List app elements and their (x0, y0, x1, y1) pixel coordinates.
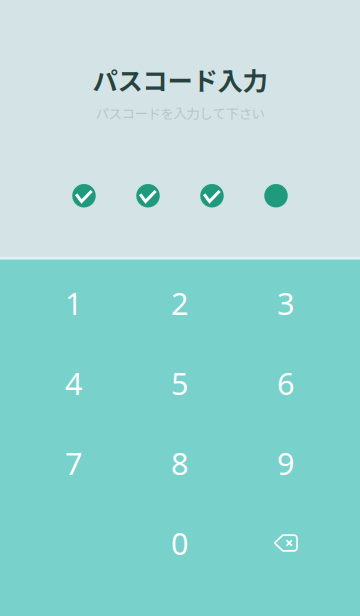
staticText: 5 (171, 363, 189, 403)
staticText: 6 (277, 363, 295, 403)
button[interactable]: 9 (233, 423, 339, 503)
staticText: パスコード入力 (92, 61, 267, 98)
staticText: 8 (171, 443, 189, 483)
staticText: 9 (277, 443, 295, 483)
staticText: 4 (65, 363, 83, 403)
button[interactable]: Delete (233, 503, 339, 583)
staticText: 3 (277, 283, 295, 323)
staticText: パスコードを入力して下さい (95, 103, 264, 122)
button[interactable]: 7 (21, 423, 127, 503)
button[interactable]: 6 (233, 343, 339, 423)
staticText: 1 (65, 283, 83, 323)
button[interactable]: 8 (127, 423, 233, 503)
button[interactable]: 0 (127, 503, 233, 583)
staticText: 7 (65, 443, 83, 483)
button[interactable]: 5 (127, 343, 233, 423)
button[interactable]: 1 (21, 263, 127, 343)
staticText: 2 (171, 283, 189, 323)
button[interactable]: 2 (127, 263, 233, 343)
staticText: 0 (171, 523, 189, 563)
button[interactable]: 3 (233, 263, 339, 343)
button[interactable]: 4 (21, 343, 127, 423)
